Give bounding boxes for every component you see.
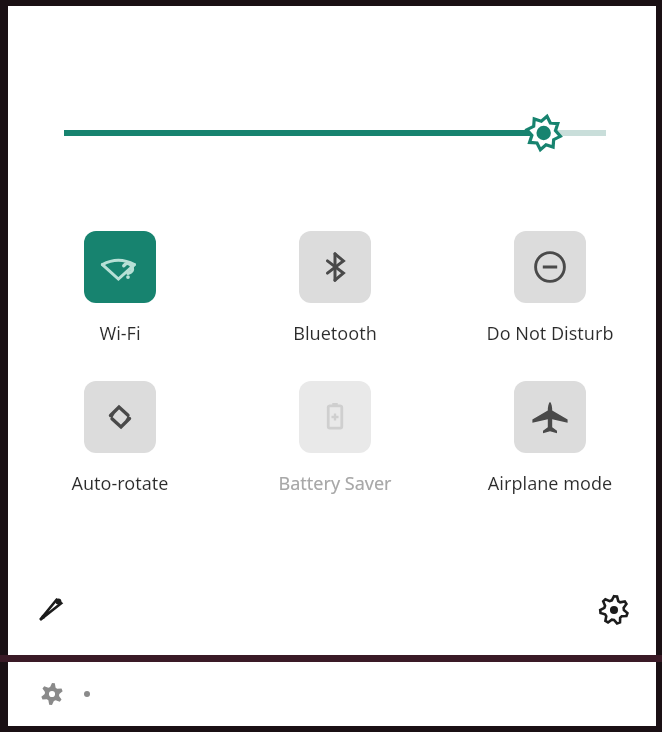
button[interactable]: Settings [36, 678, 68, 710]
button[interactable]: Brightness [8, 111, 656, 155]
staticText: Do Not Disturb [462, 321, 638, 346]
button[interactable]: Auto-rotate [32, 381, 208, 496]
button[interactable]: Airplane mode [462, 381, 638, 496]
staticText: Airplane mode [462, 471, 638, 496]
button[interactable]: Bluetooth [247, 231, 423, 346]
button[interactable]: Edit tiles [28, 588, 72, 632]
staticText: Wi-Fi [32, 321, 208, 346]
button[interactable]: Wi-Fi [32, 231, 208, 346]
staticText: Battery Saver [247, 471, 423, 496]
button[interactable]: Do Not Disturb [462, 231, 638, 346]
staticText: Auto-rotate [32, 471, 208, 496]
staticText: Bluetooth [247, 321, 423, 346]
button[interactable]: Battery Saver [247, 381, 423, 496]
button[interactable]: Settings [592, 588, 636, 632]
